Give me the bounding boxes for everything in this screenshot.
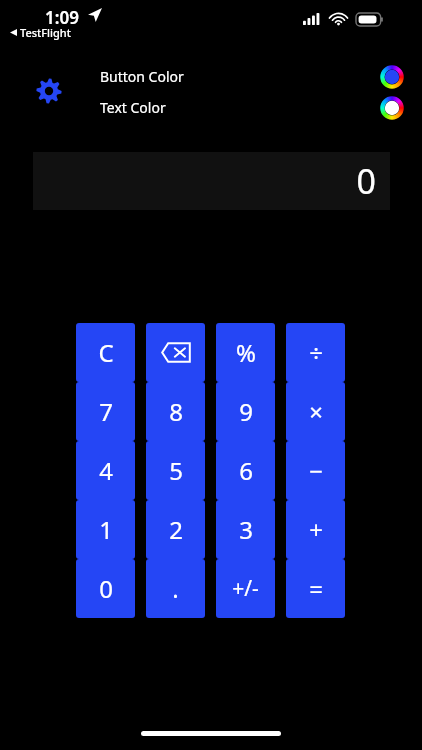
button[interactable]: 9 (216, 382, 275, 441)
staticText: % (236, 336, 256, 369)
staticText: . (172, 572, 179, 605)
button[interactable]: . (146, 559, 205, 618)
button[interactable]: 6 (216, 441, 275, 500)
staticText: ÷ (309, 336, 323, 369)
staticText: = (309, 572, 323, 605)
staticText: 0 (356, 158, 376, 204)
staticText: +/- (232, 574, 259, 603)
staticText: TestFlight (20, 25, 71, 40)
staticText: 0 (99, 572, 113, 605)
staticText: 9 (239, 395, 253, 428)
button[interactable]: 8 (146, 382, 205, 441)
button[interactable]: Backspace (146, 323, 205, 382)
staticText: 7 (99, 395, 113, 428)
button[interactable]: − (286, 441, 345, 500)
button[interactable]: Button Color (0, 64, 422, 89)
staticText: Button Color (100, 67, 184, 86)
button[interactable]: 0 (76, 559, 135, 618)
staticText: 3 (239, 513, 253, 546)
staticText: Text Color (100, 98, 166, 117)
button[interactable]: 4 (76, 441, 135, 500)
button[interactable]: 7 (76, 382, 135, 441)
staticText: 5 (169, 454, 183, 487)
staticText: C (98, 336, 114, 369)
staticText: 1 (99, 513, 113, 546)
button[interactable]: 5 (146, 441, 205, 500)
button[interactable]: Pick color (380, 65, 404, 89)
staticText: + (309, 513, 323, 546)
button[interactable]: % (216, 323, 275, 382)
staticText: 1:09 (45, 6, 79, 29)
button[interactable]: 3 (216, 500, 275, 559)
button[interactable]: ÷ (286, 323, 345, 382)
button[interactable]: = (286, 559, 345, 618)
button[interactable]: Pick color (380, 96, 404, 120)
button[interactable]: +/- (216, 559, 275, 618)
button[interactable]: 1 (76, 500, 135, 559)
staticText: 2 (169, 513, 183, 546)
button[interactable]: Settings (32, 74, 66, 108)
button[interactable]: × (286, 382, 345, 441)
staticText: × (309, 395, 323, 428)
button[interactable]: C (76, 323, 135, 382)
button[interactable]: 2 (146, 500, 205, 559)
staticText: − (309, 454, 323, 487)
staticText: 6 (239, 454, 253, 487)
button[interactable]: Text Color (0, 95, 422, 120)
staticText: 4 (99, 454, 113, 487)
button[interactable]: + (286, 500, 345, 559)
staticText: 8 (169, 395, 183, 428)
